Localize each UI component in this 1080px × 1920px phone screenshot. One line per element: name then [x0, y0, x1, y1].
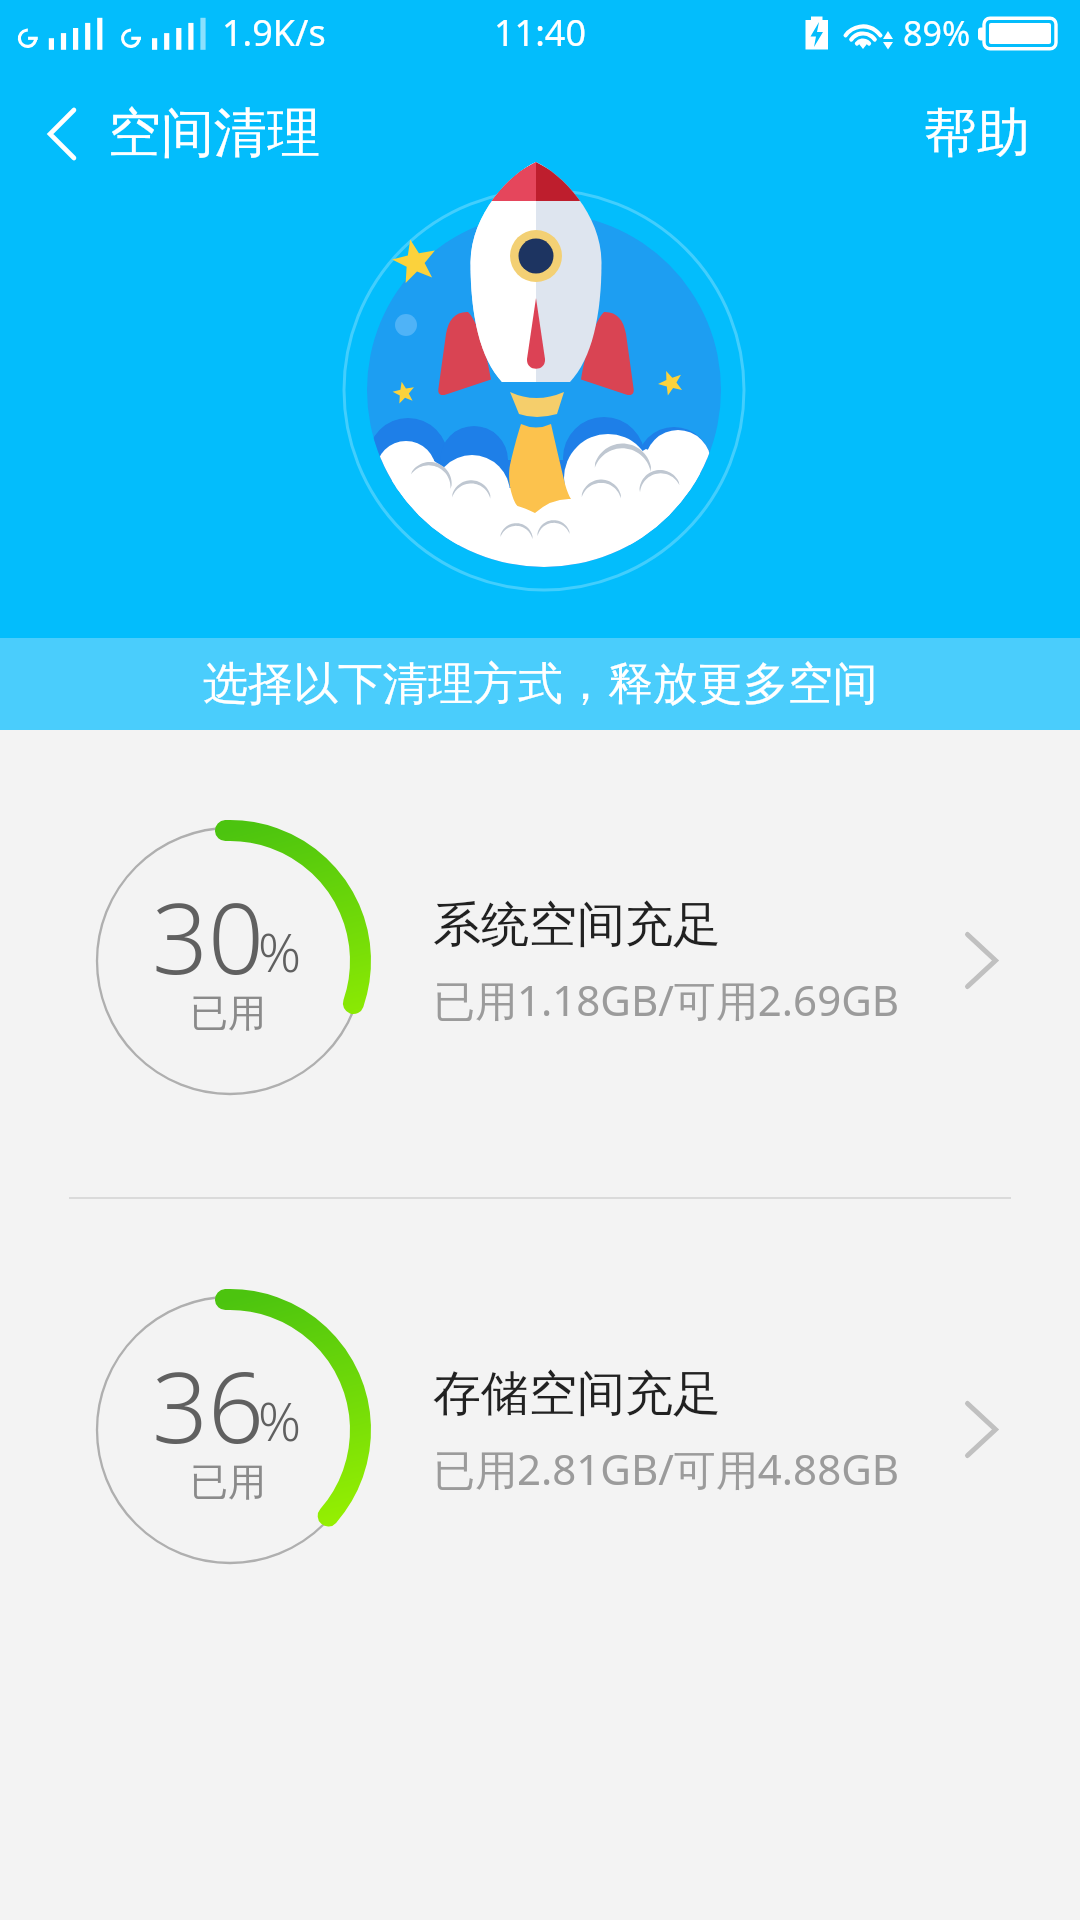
staticText: %	[258, 915, 302, 987]
staticText: 空间清理	[108, 100, 320, 167]
staticText: 已用2.81GB/可用4.88GB	[433, 1440, 900, 1497]
staticText: 选择以下清理方式，释放更多空间	[203, 656, 878, 713]
staticText: 帮助	[924, 100, 1030, 167]
staticText: 系统空间充足	[433, 895, 721, 955]
staticText: 11:40	[494, 8, 587, 57]
staticText: 30	[152, 869, 264, 1002]
other: Open details	[965, 932, 998, 989]
button[interactable]: 帮助	[900, 88, 1054, 179]
other: Open details	[965, 1401, 998, 1458]
staticText: 存储空间充足	[433, 1364, 721, 1424]
staticText: 已用	[190, 1458, 266, 1506]
staticText: 1.9K/s	[222, 8, 326, 57]
staticText: 89%	[903, 10, 971, 56]
staticText: 36	[152, 1338, 264, 1471]
button[interactable]: 36	[0, 1196, 1080, 1664]
button[interactable]: 30	[0, 727, 1080, 1195]
button[interactable]: Back	[33, 88, 342, 179]
staticText: 已用1.18GB/可用2.69GB	[433, 971, 900, 1028]
staticText: %	[258, 1384, 302, 1456]
other: Back	[49, 109, 75, 159]
staticText: 已用	[190, 989, 266, 1037]
